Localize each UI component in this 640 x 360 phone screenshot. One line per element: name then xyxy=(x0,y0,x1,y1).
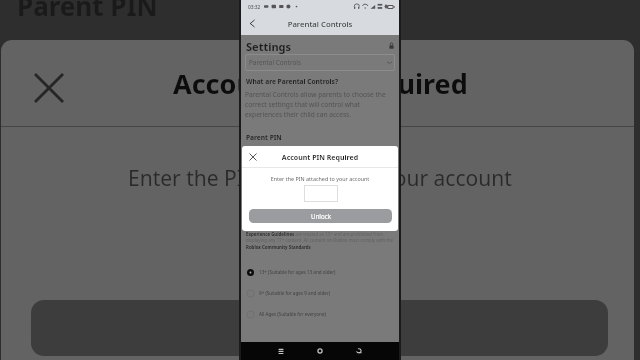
staticText: Parent PIN xyxy=(17,0,158,23)
button[interactable]: 9+ (Suitable for ages 9 and older) xyxy=(246,288,404,298)
button[interactable] xyxy=(31,300,608,356)
other: Lock xyxy=(388,42,395,49)
staticText: 03:32 xyxy=(248,4,261,11)
staticText: 9+ (Suitable for ages 9 and older) xyxy=(259,290,331,296)
staticText: Account PIN Required xyxy=(173,65,468,102)
button[interactable]: Close dialog xyxy=(249,153,257,161)
button[interactable]: 13+ (Suitable for ages 13 and older) xyxy=(246,267,404,277)
staticText: Account PIN Required xyxy=(242,153,398,163)
staticText: Parental Controls allow parents to choos… xyxy=(245,90,396,119)
staticText: Unlock xyxy=(311,212,331,220)
button[interactable]: Back xyxy=(355,347,363,355)
staticText: All Ages (Suitable for everyone) xyxy=(259,311,326,317)
staticText: Parental Controls xyxy=(249,58,301,67)
staticText: What are Parental Controls? xyxy=(246,77,339,86)
staticText: Parental Controls xyxy=(241,19,399,30)
button[interactable]: Recents xyxy=(277,347,285,355)
staticText: Enter the PIN attached to your account xyxy=(128,164,512,193)
button[interactable]: Home xyxy=(316,347,324,355)
button[interactable]: All Ages (Suitable for everyone) xyxy=(246,309,404,319)
staticText: Experience Guidelines are treated as 13+… xyxy=(246,231,396,251)
staticText: 13+ (Suitable for ages 13 and older) xyxy=(259,269,336,275)
button[interactable]: Back xyxy=(247,18,258,29)
staticText: Parent PIN xyxy=(246,133,282,142)
button[interactable] xyxy=(304,185,338,202)
button[interactable]: Unlock xyxy=(249,209,392,223)
button[interactable]: Close xyxy=(35,74,63,102)
button[interactable]: Parental Controls xyxy=(245,54,395,71)
staticText: Enter the PIN attached to your account xyxy=(242,175,398,182)
staticText: Settings xyxy=(246,39,292,54)
